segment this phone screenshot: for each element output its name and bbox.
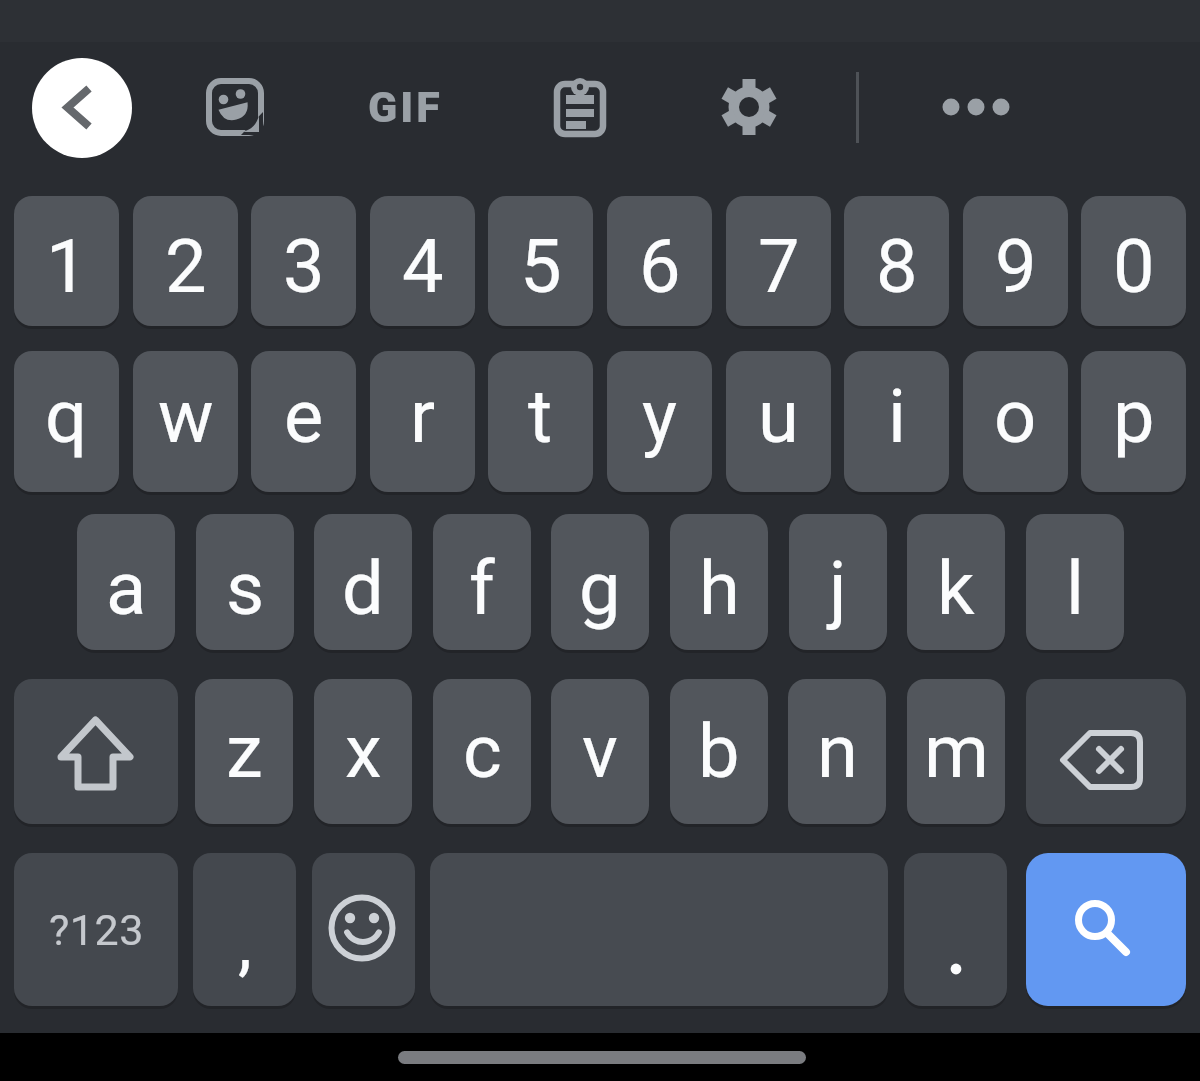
button[interactable]: GIF — [352, 77, 458, 137]
staticText: 9 — [995, 223, 1037, 310]
staticText: x — [345, 708, 382, 795]
staticText: z — [226, 708, 263, 795]
button[interactable]: 1 — [14, 196, 119, 326]
button[interactable]: m — [907, 679, 1005, 824]
staticText: 1 — [46, 223, 88, 310]
button[interactable] — [1026, 679, 1186, 824]
button[interactable]: o — [963, 351, 1068, 492]
button[interactable] — [913, 77, 1013, 137]
button[interactable]: n — [788, 679, 886, 824]
staticText: GIF — [368, 82, 443, 132]
button[interactable]: , — [193, 853, 296, 1006]
staticText: ?123 — [49, 905, 144, 955]
button[interactable] — [32, 58, 132, 158]
button[interactable]: 9 — [963, 196, 1068, 326]
staticText: 7 — [758, 223, 800, 310]
staticText: g — [579, 545, 621, 632]
staticText: b — [698, 708, 740, 795]
button[interactable]: 0 — [1081, 196, 1186, 326]
staticText: v — [582, 708, 618, 795]
staticText: s — [226, 545, 265, 632]
button[interactable]: i — [844, 351, 949, 492]
staticText: u — [758, 373, 799, 460]
button[interactable]: 8 — [844, 196, 949, 326]
button[interactable]: k — [907, 514, 1005, 650]
staticText: a — [106, 545, 147, 632]
staticText: f — [469, 545, 495, 632]
button[interactable]: l — [1026, 514, 1124, 650]
button[interactable]: f — [433, 514, 531, 650]
button[interactable] — [550, 77, 610, 137]
button[interactable] — [904, 853, 1007, 1006]
staticText: 8 — [876, 223, 918, 310]
staticText: 3 — [283, 223, 325, 310]
button[interactable]: c — [433, 679, 531, 824]
button[interactable]: r — [370, 351, 475, 492]
staticText: l — [1066, 545, 1084, 632]
button[interactable]: y — [607, 351, 712, 492]
button[interactable]: s — [196, 514, 294, 650]
button[interactable]: 2 — [133, 196, 238, 326]
button[interactable]: d — [314, 514, 412, 650]
button[interactable]: 5 — [488, 196, 593, 326]
staticText: w — [158, 373, 214, 460]
staticText: q — [45, 373, 88, 460]
staticText: j — [829, 545, 847, 632]
button[interactable]: x — [314, 679, 412, 824]
staticText: c — [463, 708, 502, 795]
button[interactable]: z — [195, 679, 293, 824]
staticText: i — [888, 373, 906, 460]
staticText: p — [1113, 373, 1155, 460]
button[interactable]: 6 — [607, 196, 712, 326]
staticText: 4 — [402, 223, 444, 310]
staticText: y — [642, 373, 678, 460]
staticText: 0 — [1113, 223, 1155, 310]
staticText: 2 — [165, 223, 207, 310]
button[interactable]: u — [726, 351, 831, 492]
staticText: m — [924, 708, 989, 795]
staticText: k — [937, 545, 975, 632]
staticText: 5 — [520, 223, 562, 310]
button[interactable] — [14, 679, 178, 824]
button[interactable]: v — [551, 679, 649, 824]
staticText: , — [238, 903, 252, 985]
button[interactable] — [312, 853, 415, 1006]
staticText: r — [410, 373, 436, 460]
button[interactable]: w — [133, 351, 238, 492]
button[interactable]: 4 — [370, 196, 475, 326]
button[interactable]: a — [77, 514, 175, 650]
button[interactable]: h — [670, 514, 768, 650]
staticText: e — [284, 373, 324, 460]
button[interactable]: t — [488, 351, 593, 492]
button[interactable]: p — [1081, 351, 1186, 492]
staticText: n — [817, 708, 858, 795]
button[interactable]: 3 — [251, 196, 356, 326]
button[interactable]: b — [670, 679, 768, 824]
staticText: h — [699, 545, 740, 632]
staticText: o — [994, 373, 1037, 460]
staticText: d — [342, 545, 384, 632]
button[interactable]: e — [251, 351, 356, 492]
staticText: t — [528, 373, 553, 460]
button[interactable] — [1026, 853, 1186, 1006]
button[interactable]: j — [789, 514, 887, 650]
button[interactable] — [719, 77, 779, 137]
button[interactable]: ?123 — [14, 853, 178, 1006]
staticText: 6 — [639, 223, 681, 310]
button[interactable] — [205, 77, 265, 137]
button[interactable]: q — [14, 351, 119, 492]
button[interactable]: g — [551, 514, 649, 650]
button[interactable]: 7 — [726, 196, 831, 326]
